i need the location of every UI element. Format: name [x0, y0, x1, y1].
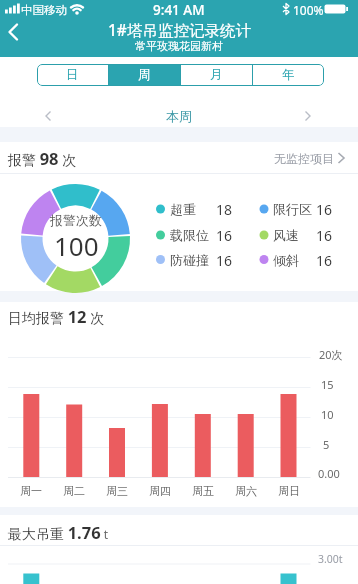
staticText: 10: [321, 407, 334, 422]
button[interactable]: 年: [253, 64, 324, 86]
button[interactable]: [294, 104, 320, 128]
staticText: 周: [138, 67, 151, 83]
staticText: 周日: [278, 484, 300, 498]
staticText: 周二: [63, 484, 85, 498]
staticText: 周三: [106, 484, 128, 498]
staticText: 周四: [149, 484, 171, 498]
staticText: 16: [316, 200, 333, 219]
staticText: 1#塔吊监控记录统计: [108, 19, 251, 40]
button[interactable]: 周: [109, 64, 180, 86]
staticText: 3.00t: [318, 552, 343, 566]
staticText: 16: [316, 251, 333, 270]
staticText: 报警 98 次: [8, 147, 77, 169]
staticText: 无监控项目: [274, 151, 334, 166]
staticText: 本周: [166, 108, 192, 124]
staticText: 月: [210, 67, 223, 83]
staticText: 16: [316, 226, 333, 245]
staticText: 防碰撞: [170, 252, 209, 268]
staticText: 5: [323, 437, 330, 452]
staticText: 报警次数: [50, 212, 102, 228]
staticText: 日均报警 12 次: [8, 305, 105, 327]
staticText: 最大吊重 1.76 t: [8, 521, 109, 543]
button[interactable]: [36, 104, 62, 128]
staticText: 周五: [192, 484, 214, 498]
staticText: 100%: [293, 2, 324, 18]
staticText: 0.00: [318, 466, 340, 481]
button[interactable]: [0, 18, 40, 57]
staticText: 18: [216, 200, 233, 219]
staticText: 倾斜: [273, 252, 299, 268]
staticText: 超重: [170, 201, 196, 217]
staticText: 日: [66, 67, 79, 83]
staticText: 中国移动: [21, 3, 67, 17]
staticText: 年: [282, 67, 295, 83]
staticText: 20次: [319, 347, 343, 362]
staticText: 16: [216, 226, 233, 245]
button[interactable]: 无监控项目: [258, 146, 350, 170]
button[interactable]: 月: [181, 64, 252, 86]
staticText: 100: [54, 228, 99, 260]
staticText: 风速: [273, 227, 299, 243]
staticText: 16: [216, 251, 233, 270]
staticText: 15: [321, 377, 334, 392]
button[interactable]: 日: [37, 64, 108, 86]
staticText: 9:41 AM: [153, 1, 205, 19]
staticText: 限行区: [273, 201, 312, 217]
staticText: 载限位: [170, 227, 209, 243]
staticText: 常平玫瑰花园新村: [135, 39, 223, 53]
staticText: 周六: [235, 484, 257, 498]
staticText: 周一: [20, 484, 42, 498]
